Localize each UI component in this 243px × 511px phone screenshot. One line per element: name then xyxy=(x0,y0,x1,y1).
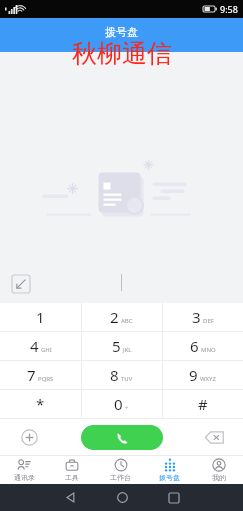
staticText: 1 xyxy=(36,307,45,327)
staticText: PQRS xyxy=(38,375,54,383)
button[interactable]: 3 xyxy=(162,303,243,331)
staticText: 5 xyxy=(112,336,121,356)
staticText: 0 xyxy=(114,394,123,414)
staticText: 我的 xyxy=(212,473,226,482)
staticText: 秋柳通信 xyxy=(72,38,172,69)
staticText: # xyxy=(198,394,208,414)
staticText: 拨号盘 xyxy=(105,25,138,39)
button[interactable]: 7 xyxy=(0,361,81,389)
staticText: 拨号盘 xyxy=(159,473,180,482)
button[interactable]: 拨号 xyxy=(81,425,163,450)
staticText: 9 xyxy=(189,365,198,385)
staticText: 3 xyxy=(192,307,201,327)
staticText: TUV xyxy=(121,375,133,383)
staticText: 4 xyxy=(30,336,39,356)
button[interactable]: 通讯录 xyxy=(0,455,48,484)
staticText: 2 xyxy=(110,307,119,327)
button[interactable]: 返回 xyxy=(44,484,96,511)
button[interactable]: 工作台 xyxy=(96,455,145,484)
staticText: 工作台 xyxy=(110,473,131,482)
button[interactable]: 我的 xyxy=(194,455,243,484)
button[interactable]: 收起 xyxy=(12,275,30,293)
staticText: 9:58 xyxy=(220,3,238,15)
staticText: 8 xyxy=(110,365,119,385)
button[interactable]: 5 xyxy=(81,332,162,360)
button[interactable]: 添加联系人 xyxy=(0,419,58,455)
staticText: ABC xyxy=(121,317,133,325)
button[interactable]: # xyxy=(162,390,243,418)
button[interactable]: 4 xyxy=(0,332,81,360)
staticText: JKL xyxy=(123,346,132,354)
staticText: 6 xyxy=(190,336,199,356)
button[interactable]: 6 xyxy=(162,332,243,360)
button[interactable]: 8 xyxy=(81,361,162,389)
staticText: WXYZ xyxy=(200,375,216,383)
button[interactable]: 工具 xyxy=(48,455,96,484)
staticText: * xyxy=(36,394,45,414)
button[interactable]: 最近任务 xyxy=(148,484,200,511)
staticText: + xyxy=(125,404,129,412)
staticText: 通讯录 xyxy=(14,473,35,482)
button[interactable]: * xyxy=(0,390,81,418)
button[interactable]: 2 xyxy=(81,303,162,331)
staticText: MNO xyxy=(201,346,216,354)
button[interactable]: 9 xyxy=(162,361,243,389)
button[interactable]: 主页 xyxy=(96,484,148,511)
staticText: 7 xyxy=(27,365,36,385)
button[interactable]: 0 xyxy=(81,390,162,418)
staticText: 工具 xyxy=(65,473,79,482)
button[interactable]: 1 xyxy=(0,303,81,331)
staticText: GHI xyxy=(41,346,52,354)
button[interactable]: 拨号盘 xyxy=(145,455,194,484)
button[interactable]: 删除 xyxy=(185,419,243,455)
staticText: DEF xyxy=(203,317,214,325)
